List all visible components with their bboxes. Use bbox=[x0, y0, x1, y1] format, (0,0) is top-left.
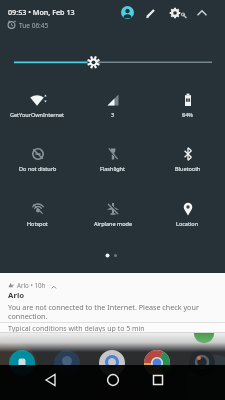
staticText: 3 bbox=[111, 111, 115, 118]
button[interactable]: Hotspot bbox=[0, 201, 75, 235]
button[interactable]: 84% bbox=[150, 92, 225, 126]
button[interactable] bbox=[0, 52, 225, 72]
button[interactable]: Typical conditions with delays up to 5 m… bbox=[0, 323, 225, 332]
staticText: You are not connected to the Internet. P… bbox=[8, 302, 199, 321]
button[interactable]: Bluetooth bbox=[150, 146, 225, 180]
button[interactable]: GetYourOwnInternet bbox=[0, 92, 75, 126]
button[interactable]: Arlo • 10h bbox=[0, 273, 225, 322]
button[interactable]: Airplane mode bbox=[75, 201, 150, 235]
button[interactable] bbox=[195, 6, 209, 20]
staticText: Airplane mode bbox=[94, 220, 132, 227]
staticText: Do not disturb bbox=[19, 165, 57, 172]
button[interactable] bbox=[144, 6, 158, 20]
button[interactable]: Flashlight bbox=[75, 146, 150, 180]
staticText: Arlo bbox=[8, 290, 25, 301]
button[interactable] bbox=[40, 369, 62, 391]
staticText: Bluetooth bbox=[175, 165, 201, 172]
staticText: Flashlight bbox=[100, 165, 125, 172]
button[interactable]: 3 bbox=[75, 92, 150, 126]
button[interactable] bbox=[102, 369, 124, 391]
staticText: GetYourOwnInternet bbox=[10, 111, 65, 118]
staticText: Arlo • 10h bbox=[17, 281, 46, 289]
staticText: 09:53 • Mon, Feb 13 bbox=[8, 7, 75, 17]
staticText: Location bbox=[176, 220, 199, 227]
staticText: Typical conditions with delays up to 5 m… bbox=[8, 324, 145, 333]
staticText: Hotspot bbox=[27, 220, 48, 227]
staticText: 84% bbox=[182, 111, 193, 118]
button[interactable] bbox=[168, 6, 188, 26]
button[interactable] bbox=[147, 369, 169, 391]
button[interactable]: Do not disturb bbox=[0, 146, 75, 180]
button[interactable] bbox=[121, 6, 134, 19]
staticText: Tue 06:45 bbox=[19, 21, 49, 30]
button[interactable]: Location bbox=[150, 201, 225, 235]
